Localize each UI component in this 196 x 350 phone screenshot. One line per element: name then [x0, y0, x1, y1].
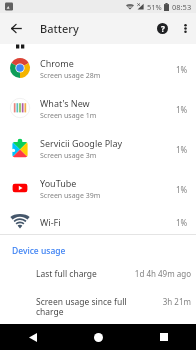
staticText: 1d 4h 49m ago	[128, 268, 191, 279]
staticText: 1%	[176, 104, 188, 115]
button[interactable]: Home	[66, 324, 131, 350]
staticText: Screen usage 3m	[40, 151, 97, 161]
staticText: Chrome	[40, 57, 74, 69]
button[interactable]: Back	[0, 13, 32, 44]
button[interactable]: What's New	[0, 88, 196, 128]
staticText: 1%	[176, 144, 188, 155]
staticText: Battery	[40, 21, 79, 36]
button[interactable]: Back	[0, 324, 66, 350]
staticText: Last full charge	[36, 268, 126, 280]
staticText: 1%	[176, 184, 188, 195]
staticText: 1%	[176, 64, 188, 75]
staticText: Screen usage since full charge	[36, 296, 136, 317]
button[interactable]: Screen usage since full charge	[0, 288, 196, 328]
staticText: 51%	[147, 2, 162, 12]
button[interactable]: More options	[174, 13, 196, 44]
staticText: YouTube	[40, 177, 77, 189]
staticText: Device usage	[12, 245, 66, 257]
button[interactable]: Help	[150, 13, 174, 44]
button[interactable]: Last full charge	[0, 262, 196, 288]
staticText: 08:53	[172, 2, 192, 12]
staticText: ?	[161, 23, 165, 34]
staticText: Screen usage 1m	[40, 111, 97, 121]
button[interactable]: YouTube	[0, 168, 196, 208]
button[interactable]: Wi-Fi	[0, 208, 196, 234]
button[interactable]: Chrome	[0, 48, 196, 88]
staticText: Screen usage 28m	[40, 71, 101, 81]
staticText: What's New	[40, 97, 90, 109]
staticText: Servicii Google Play	[40, 137, 123, 149]
button[interactable]: Recent apps	[131, 324, 196, 350]
button[interactable]: Servicii Google Play	[0, 128, 196, 168]
staticText: 3h 21m	[138, 296, 191, 307]
staticText: Screen usage 39m	[40, 191, 101, 201]
staticText: Wi-Fi	[40, 216, 61, 228]
staticText: 1%	[176, 217, 188, 228]
